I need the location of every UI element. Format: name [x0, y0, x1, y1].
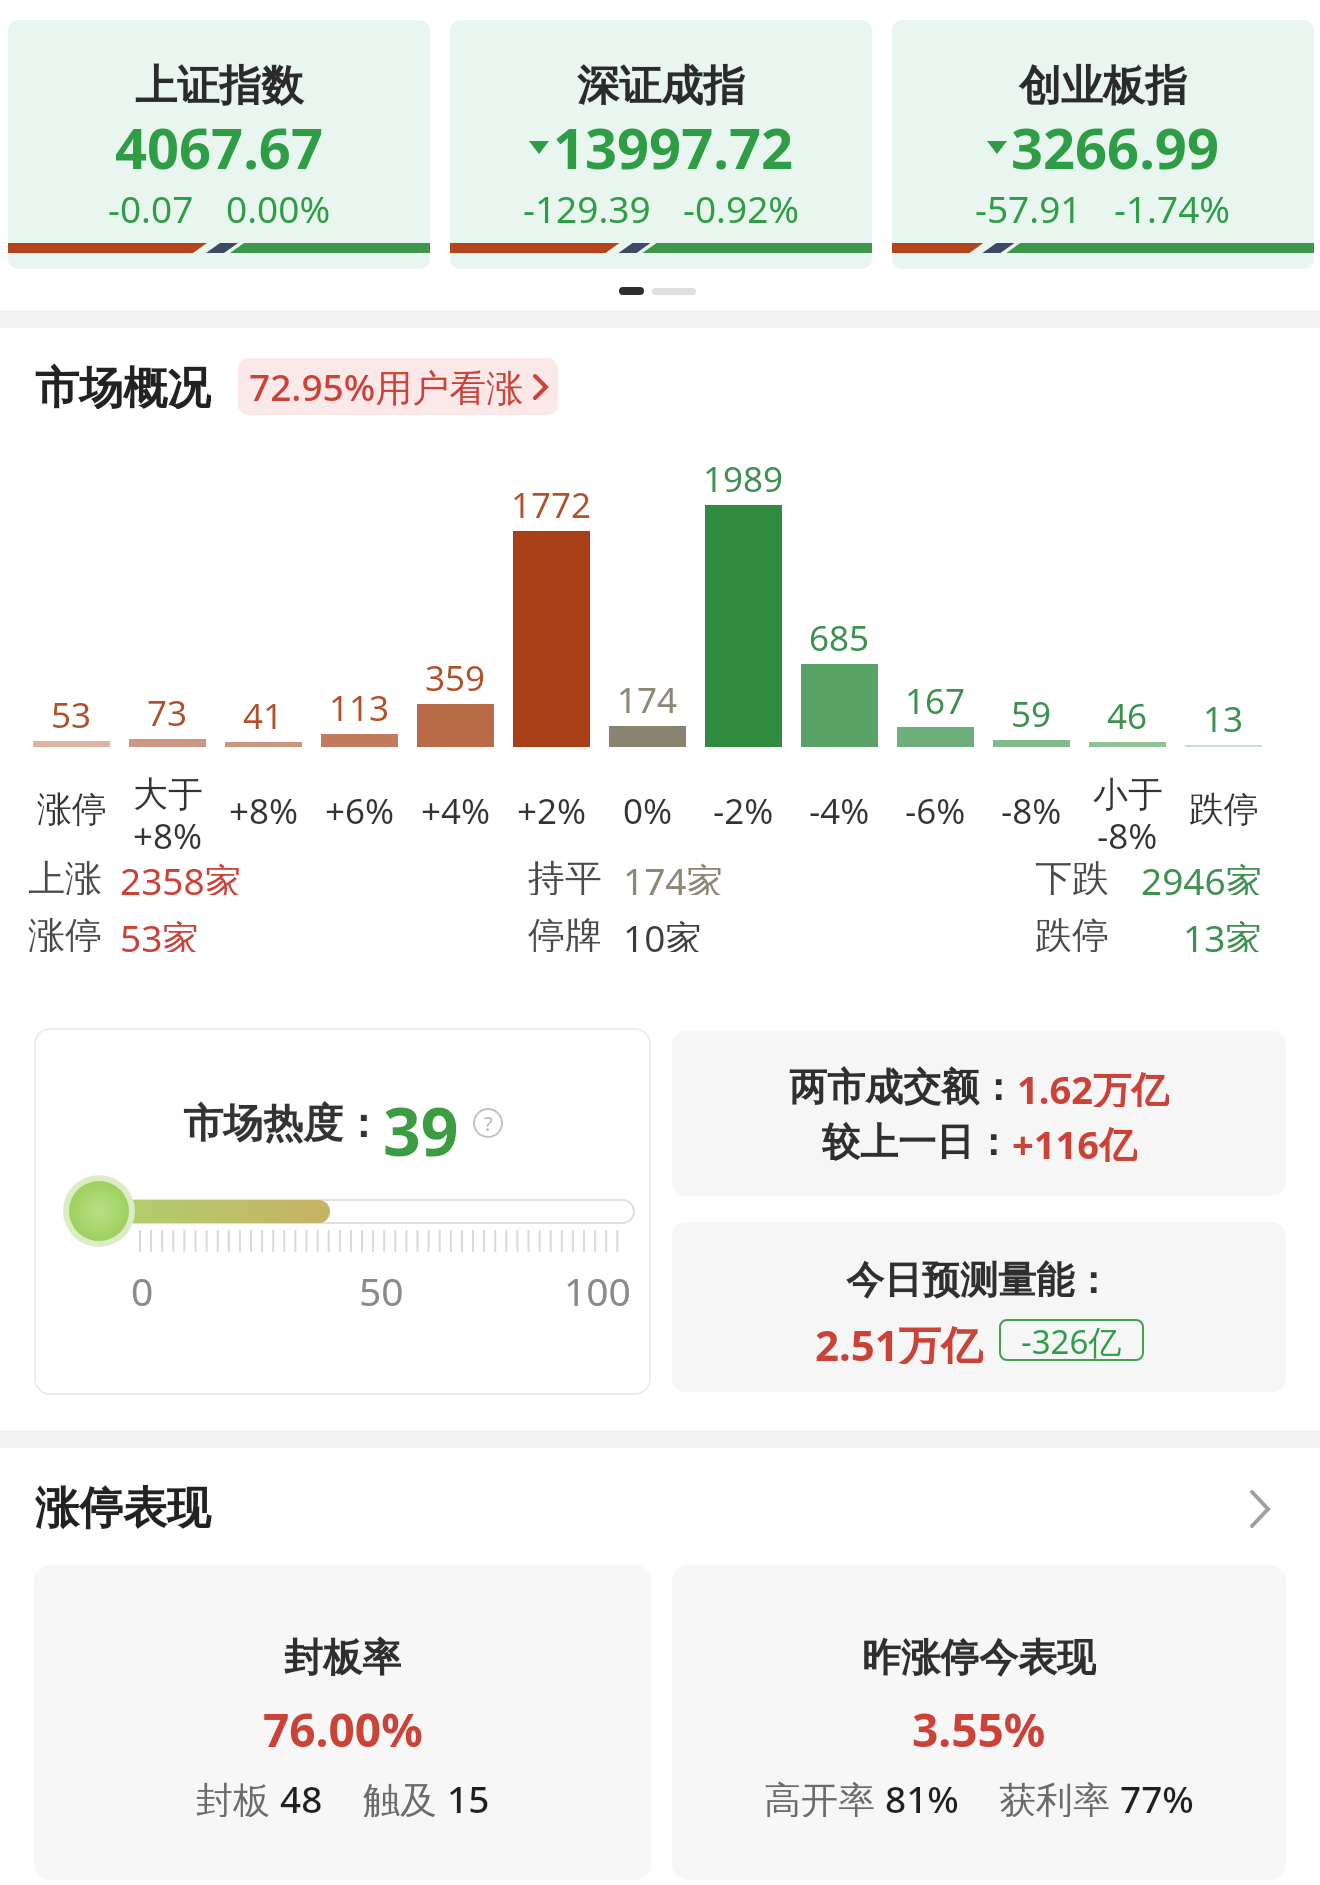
staticText: 1989 [703, 455, 784, 493]
staticText: 174家 [623, 855, 724, 895]
staticText: -8% [1001, 787, 1062, 827]
staticText: 触及 [363, 1773, 447, 1817]
staticText: -57.91 [975, 183, 1082, 231]
staticText: 市场概况 [35, 361, 211, 409]
staticText: 跌停 [1189, 787, 1259, 827]
staticText: 53 [51, 691, 92, 729]
button[interactable]: 创业板指 [892, 20, 1314, 269]
staticText: 72.95%用户看涨 [249, 361, 524, 412]
staticText: 涨停 [28, 912, 102, 952]
staticText: 73 [147, 689, 188, 727]
staticText: 两市成交额： [789, 1063, 1017, 1107]
staticText: 昨涨停今表现 [862, 1633, 1096, 1677]
staticText: -0.92% [683, 183, 800, 231]
staticText: 113 [329, 684, 390, 722]
staticText: 2358家 [120, 855, 242, 895]
staticText: +4% [421, 787, 491, 827]
staticText: 1.62万亿 [1017, 1063, 1169, 1107]
staticText: 跌停 [1035, 912, 1109, 952]
staticText: 685 [809, 614, 870, 652]
staticText: +8% [229, 787, 299, 827]
staticText: 53家 [120, 912, 200, 952]
button[interactable]: 市场热度： [34, 1028, 651, 1395]
button[interactable]: 72.95%用户看涨 [238, 358, 558, 415]
staticText: 39 [383, 1085, 459, 1161]
staticText: -129.39 [523, 183, 651, 231]
staticText: 13家 [1183, 912, 1263, 952]
staticText: 3266.99 [1011, 109, 1219, 185]
staticText: 封板 [196, 1773, 280, 1817]
staticText: 3.55% [912, 1698, 1046, 1750]
staticText: 59 [1011, 690, 1052, 728]
staticText: 获利率 [999, 1773, 1120, 1817]
staticText: -0.07 [108, 183, 194, 231]
staticText: -1.74% [1114, 183, 1231, 231]
staticText: 深证成指 [577, 60, 745, 113]
staticText: 15 [447, 1773, 490, 1817]
staticText: +116亿 [1012, 1118, 1137, 1162]
staticText: 0 [131, 1264, 154, 1312]
button[interactable]: 深证成指 [450, 20, 872, 269]
staticText: 创业板指 [1019, 60, 1187, 113]
staticText: 下跌 [1035, 855, 1109, 895]
staticText: 81% [885, 1773, 959, 1817]
staticText: 76.00% [263, 1698, 423, 1750]
staticText: 13997.72 [553, 109, 793, 185]
staticText: 359 [425, 654, 486, 692]
staticText: ? [484, 1110, 493, 1137]
button[interactable]: 上证指数 [8, 20, 430, 269]
button[interactable]: 昨涨停今表现 [672, 1565, 1286, 1880]
staticText: -6% [905, 787, 966, 827]
staticText: 0.00% [226, 183, 331, 231]
staticText: 41 [243, 692, 284, 730]
staticText: 小于 [1093, 772, 1163, 812]
button[interactable]: 今日预测量能： [672, 1222, 1286, 1392]
staticText: -326亿 [1021, 1319, 1122, 1361]
staticText: 封板率 [284, 1633, 401, 1677]
staticText: 停牌 [528, 912, 602, 952]
staticText: 13 [1203, 695, 1244, 733]
staticText: +6% [325, 787, 395, 827]
staticText: 今日预测量能： [846, 1256, 1112, 1300]
staticText: 4067.67 [115, 109, 323, 185]
button[interactable]: 涨停表现 [0, 1480, 1320, 1536]
staticText: 涨停表现 [35, 1481, 211, 1536]
staticText: 1772 [511, 481, 592, 519]
staticText: 上涨 [28, 855, 102, 895]
staticText: -2% [713, 787, 774, 827]
staticText: 上证指数 [135, 60, 303, 113]
staticText: 100 [564, 1264, 631, 1312]
staticText: 2.51万亿 [815, 1316, 983, 1364]
staticText: 77% [1120, 1773, 1194, 1817]
staticText: 46 [1107, 692, 1148, 730]
staticText: 持平 [528, 855, 602, 895]
staticText: 大于 [133, 772, 203, 812]
staticText: 0% [623, 787, 673, 827]
staticText: 涨停 [37, 787, 107, 827]
staticText: 市场热度： [183, 1098, 383, 1148]
staticText: 10家 [623, 912, 703, 952]
staticText: 较上一日： [822, 1118, 1012, 1162]
button[interactable]: 两市成交额： [672, 1031, 1286, 1196]
staticText: 167 [905, 677, 966, 715]
button[interactable]: 封板率 [34, 1565, 651, 1880]
staticText: 50 [359, 1264, 404, 1312]
staticText: +8% [133, 812, 203, 852]
staticText: 2946家 [1141, 855, 1263, 895]
staticText: +2% [517, 787, 587, 827]
staticText: 174 [617, 676, 678, 714]
staticText: 48 [280, 1773, 323, 1817]
staticText: -4% [809, 787, 870, 827]
staticText: 高开率 [764, 1773, 885, 1817]
staticText: -8% [1097, 812, 1158, 852]
